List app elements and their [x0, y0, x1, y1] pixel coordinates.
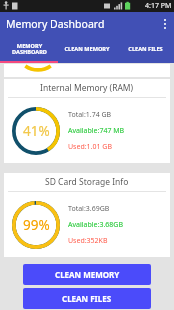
button[interactable]: Internal Memory (RAM): [4, 79, 170, 163]
staticText: CLEAN MEMORY: [55, 269, 120, 280]
staticText: Available:3.68GB: [68, 220, 123, 230]
staticText: CLEAN MEMORY: [64, 45, 110, 53]
staticText: Available:747 MB: [68, 126, 125, 136]
staticText: Internal Memory (RAM): [40, 82, 134, 94]
staticText: 4:17 PM: [145, 1, 172, 11]
staticText: Used:1.01 GB: [68, 142, 112, 152]
staticText: CLEAN FILES: [128, 45, 163, 53]
staticText: 41%: [23, 122, 50, 140]
button[interactable]: SD Card Storage Info: [4, 173, 170, 257]
staticText: MEMORY DASHBOARD: [12, 42, 47, 56]
staticText: 99%: [23, 216, 50, 234]
button[interactable]: More options: [156, 12, 174, 36]
staticText: Total:3.69GB: [68, 204, 110, 214]
button[interactable]: CLEAN FILES: [116, 36, 174, 61]
button[interactable]: CLEAN FILES: [23, 288, 151, 309]
staticText: CLEAN FILES: [62, 293, 112, 304]
staticText: Total:1.74 GB: [68, 110, 112, 120]
staticText: SD Card Storage Info: [45, 176, 129, 188]
staticText: Memory Dashboard: [6, 17, 105, 31]
button[interactable]: CLEAN MEMORY: [58, 36, 116, 61]
button[interactable]: MEMORY DASHBOARD: [0, 36, 58, 61]
button[interactable]: CLEAN MEMORY: [23, 264, 151, 285]
staticText: Used:352KB: [68, 236, 108, 246]
